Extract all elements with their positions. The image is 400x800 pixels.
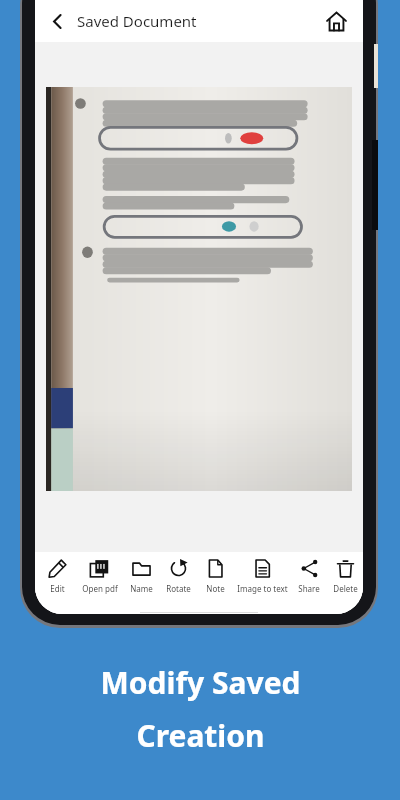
button[interactable]: Share xyxy=(291,559,327,594)
button[interactable]: Home xyxy=(318,3,354,39)
staticText: Modify Saved xyxy=(100,662,301,703)
button[interactable]: Rotate xyxy=(159,559,197,594)
button[interactable]: Open pdf xyxy=(76,559,123,594)
staticText: Name xyxy=(130,583,153,594)
button[interactable]: Edit xyxy=(39,559,76,594)
button[interactable]: Back xyxy=(40,4,74,38)
staticText: Rotate xyxy=(166,583,191,594)
staticText: Note xyxy=(206,583,225,594)
button[interactable] xyxy=(46,87,352,491)
button[interactable]: Delete xyxy=(327,559,363,594)
staticText: Share xyxy=(298,583,320,594)
staticText: Delete xyxy=(333,583,358,594)
staticText: Open pdf xyxy=(82,583,118,594)
staticText: Saved Document xyxy=(77,11,197,31)
staticText: Image to text xyxy=(237,583,288,594)
button[interactable]: Name xyxy=(123,559,159,594)
button[interactable]: Image to text xyxy=(233,559,291,594)
button[interactable]: Note xyxy=(197,559,233,594)
staticText: Edit xyxy=(50,583,65,594)
staticText: Creation xyxy=(136,715,265,756)
